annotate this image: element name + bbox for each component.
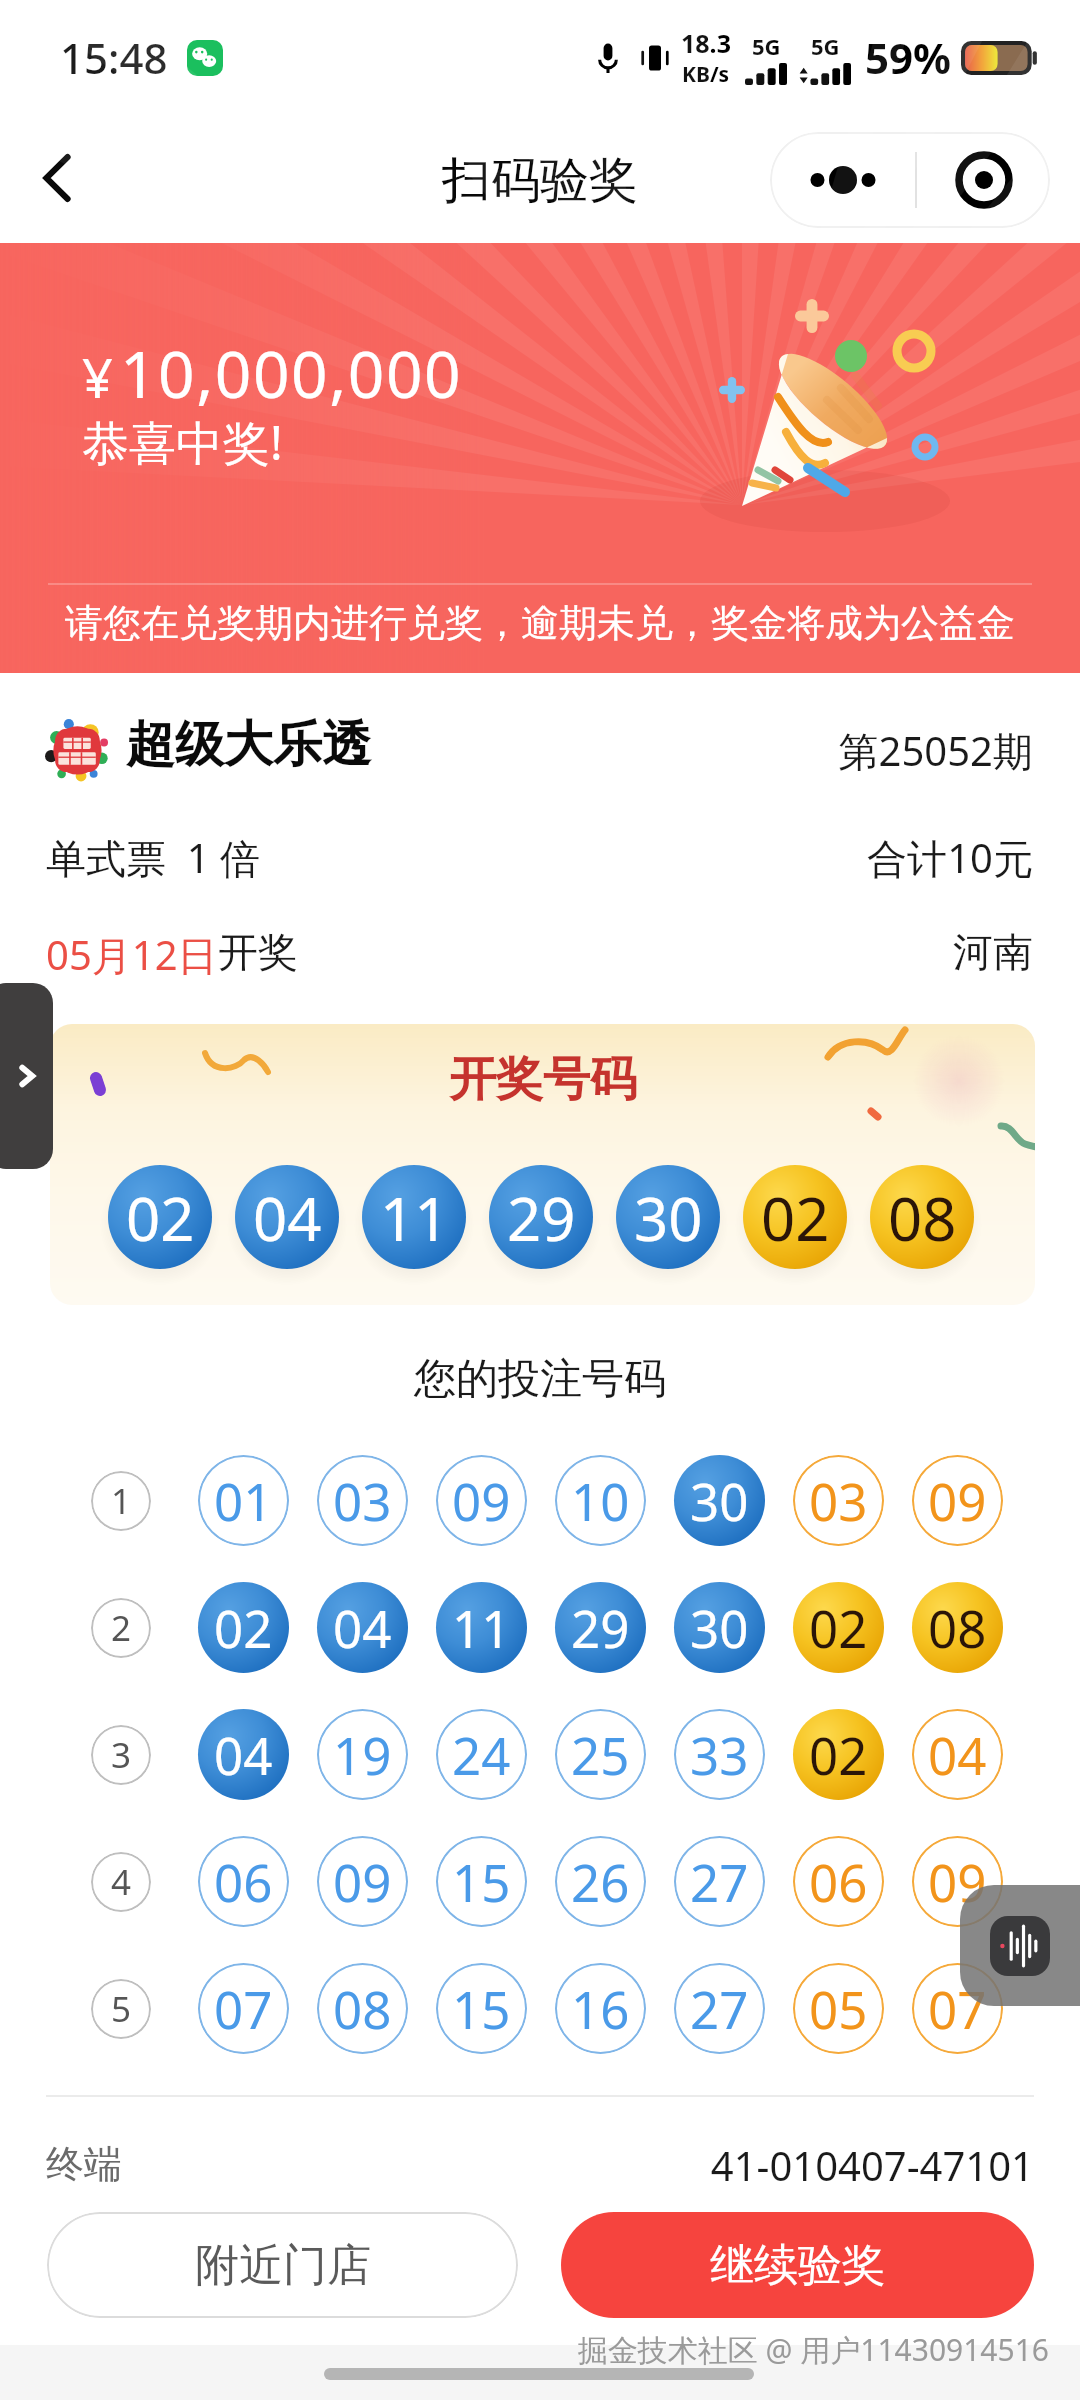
staticText: 4 (111, 1858, 132, 1906)
staticText: 15:48 (60, 29, 168, 86)
button[interactable]: Voice assistant (960, 1885, 1080, 2006)
staticText: 开奖号码 (449, 1050, 637, 1109)
staticText: 24 (452, 1720, 511, 1789)
staticText: 04 (928, 1720, 987, 1789)
staticText: ¥ (82, 340, 113, 414)
staticText: 25 (571, 1720, 630, 1789)
staticText: 扫码验奖 (442, 150, 638, 212)
staticText: 04 (214, 1720, 273, 1789)
staticText: 09 (928, 1847, 987, 1916)
staticText: 11 (380, 1177, 449, 1258)
staticText: 02 (761, 1177, 830, 1258)
staticText: 30 (690, 1466, 749, 1535)
staticText: 18.3 (681, 26, 731, 60)
staticText: 请您在兑奖期内进行兑奖，逾期未兑，奖金将成为公益金 (0, 599, 1080, 647)
staticText: 合计10元 (0, 830, 1033, 885)
staticText: 超级大乐透 (126, 714, 371, 776)
button[interactable]: Close mini program (917, 132, 1050, 228)
staticText: 5 (111, 1985, 132, 2033)
staticText: 11 (452, 1593, 511, 1662)
staticText: 附近门店 (195, 2238, 371, 2293)
staticText: 02 (214, 1593, 273, 1662)
staticText: 06 (809, 1847, 868, 1916)
staticText: 09 (333, 1847, 392, 1916)
staticText: 03 (333, 1466, 392, 1535)
staticText: 41-010407-47101 (0, 2138, 1034, 2192)
staticText: 开奖 (218, 927, 298, 977)
button[interactable]: Back (17, 138, 97, 218)
staticText: 03 (809, 1466, 868, 1535)
staticText: 3 (111, 1731, 132, 1779)
staticText: 19 (333, 1720, 392, 1789)
staticText: 08 (888, 1177, 957, 1258)
staticText: 1 (111, 1477, 132, 1525)
staticText: 59% (865, 29, 951, 86)
staticText: 5G (811, 31, 840, 61)
button[interactable]: More (770, 132, 915, 228)
staticText: 33 (690, 1720, 749, 1789)
staticText: 16 (571, 1974, 630, 2043)
staticText: 河南 (0, 927, 1033, 977)
staticText: 掘金技术社区 @ 用户11430914516 (0, 2329, 1049, 2370)
button[interactable]: Open panel (0, 983, 53, 1169)
staticText: 15 (452, 1974, 511, 2043)
button[interactable]: 继续验奖 (561, 2212, 1034, 2318)
staticText: 02 (126, 1177, 195, 1258)
staticText: 单式票 1 倍 (46, 830, 261, 885)
staticText: 2 (111, 1604, 132, 1652)
staticText: 27 (690, 1974, 749, 2043)
staticText: 02 (809, 1720, 868, 1789)
staticText: 30 (634, 1177, 703, 1258)
staticText: 10 (571, 1466, 630, 1535)
staticText: 06 (214, 1847, 273, 1916)
staticText: 09 (928, 1466, 987, 1535)
staticText: 09 (452, 1466, 511, 1535)
staticText: 27 (690, 1847, 749, 1916)
staticText: 26 (571, 1847, 630, 1916)
staticText: 07 (214, 1974, 273, 2043)
staticText: 30 (690, 1593, 749, 1662)
staticText: 08 (928, 1593, 987, 1662)
staticText: 10,000,000 (120, 330, 463, 417)
staticText: 29 (571, 1593, 630, 1662)
staticText: 继续验奖 (710, 2238, 886, 2293)
staticText: 终端 (46, 2140, 122, 2188)
staticText: 04 (253, 1177, 322, 1258)
staticText: 您的投注号码 (0, 1353, 1080, 1406)
staticText: 第25052期 (0, 723, 1033, 778)
staticText: 15 (452, 1847, 511, 1916)
staticText: 01 (214, 1466, 273, 1535)
staticText: 04 (333, 1593, 392, 1662)
staticText: 恭喜中奖! (82, 410, 283, 474)
staticText: 02 (809, 1593, 868, 1662)
staticText: 5G (752, 31, 781, 61)
staticText: KB/s (682, 60, 730, 89)
staticText: 07 (928, 1974, 987, 2043)
staticText: 05 (809, 1974, 868, 2043)
staticText: 08 (333, 1974, 392, 2043)
staticText: 05月12日 (46, 927, 218, 982)
staticText: 29 (507, 1177, 576, 1258)
button[interactable]: 附近门店 (47, 2212, 518, 2318)
